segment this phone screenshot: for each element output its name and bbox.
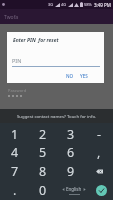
button[interactable]: 0	[29, 181, 57, 200]
staticText: PIN	[12, 57, 22, 64]
button[interactable]: 3	[57, 125, 85, 143]
staticText: YES	[80, 73, 88, 79]
staticText: 3	[67, 126, 75, 143]
button[interactable]: NO	[63, 71, 77, 81]
staticText: 6	[67, 144, 75, 161]
button[interactable]: 7	[0, 162, 29, 181]
staticText: 0	[39, 182, 47, 199]
button[interactable]: 2	[29, 125, 57, 143]
staticText: Twofa	[4, 14, 19, 21]
staticText: 4	[11, 144, 19, 161]
staticText: .	[13, 182, 17, 199]
staticText: ,	[97, 144, 101, 161]
button[interactable]: 8	[29, 162, 57, 181]
staticText: Enter PIN for reset	[13, 37, 59, 44]
button[interactable]: Backspace	[85, 162, 113, 181]
staticText: 4G	[61, 2, 67, 7]
staticText: -	[97, 126, 102, 143]
button[interactable]: 5	[29, 143, 57, 162]
staticText: English	[66, 186, 82, 192]
button[interactable]: 9	[57, 162, 85, 181]
button[interactable]: Enter	[85, 181, 113, 200]
staticText: 8	[39, 163, 47, 180]
button[interactable]: ,	[85, 143, 113, 162]
staticText: NO	[66, 73, 74, 79]
staticText: 2	[39, 126, 47, 143]
staticText: 9	[67, 163, 75, 180]
staticText: Password	[8, 88, 27, 93]
button[interactable]: .	[0, 181, 29, 200]
staticText: 3G	[48, 2, 54, 7]
staticText: Suggest contact names? Touch for info.	[17, 113, 97, 119]
button[interactable]: -	[85, 125, 113, 143]
button[interactable]: 1	[0, 125, 29, 143]
staticText: 5	[39, 144, 47, 161]
button[interactable]: English	[57, 181, 85, 200]
staticText: 7	[11, 163, 19, 180]
staticText: 58%	[84, 2, 92, 7]
button[interactable]: 4	[0, 143, 29, 162]
button[interactable]: YES	[77, 71, 91, 81]
staticText: 1	[11, 126, 19, 143]
button[interactable]: 6	[57, 143, 85, 162]
staticText: 3:49 PM	[94, 2, 111, 8]
